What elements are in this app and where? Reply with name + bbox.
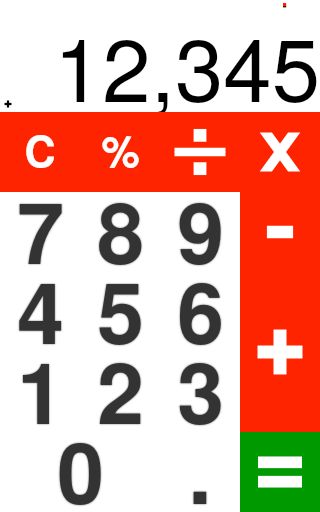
staticText: .	[188, 409, 212, 512]
staticText: 7	[17, 169, 64, 289]
staticText: 12,345	[53, 2, 320, 127]
staticText: 2	[97, 329, 144, 449]
button[interactable]: Plus	[240, 272, 320, 432]
staticText: 9	[177, 169, 224, 289]
button[interactable]: 4	[0, 272, 80, 352]
staticText: 5	[97, 249, 144, 369]
staticText: 3	[177, 329, 224, 449]
staticText: 4	[17, 249, 64, 369]
button[interactable]: 9	[160, 192, 240, 272]
button[interactable]: C	[0, 112, 80, 192]
staticText: 0	[57, 409, 104, 512]
button[interactable]: .	[160, 432, 240, 512]
button[interactable]: 6	[160, 272, 240, 352]
button[interactable]: 0	[0, 432, 160, 512]
button[interactable]: 5	[80, 272, 160, 352]
button[interactable]: 7	[0, 192, 80, 272]
button[interactable]: 1	[0, 352, 80, 432]
button[interactable]: 8	[80, 192, 160, 272]
staticText: 8	[97, 169, 144, 289]
button[interactable]: Equals	[240, 432, 320, 512]
button[interactable]: 2	[80, 352, 160, 432]
button[interactable]: Divide	[160, 112, 240, 192]
staticText: 6	[177, 249, 224, 369]
staticText: %	[101, 119, 140, 181]
button[interactable]: 3	[160, 352, 240, 432]
button[interactable]: Minus	[240, 192, 320, 272]
staticText: 1	[17, 329, 64, 449]
button[interactable]: %	[80, 112, 160, 192]
button[interactable]: Multiply	[240, 112, 320, 192]
staticText: C	[24, 119, 56, 181]
